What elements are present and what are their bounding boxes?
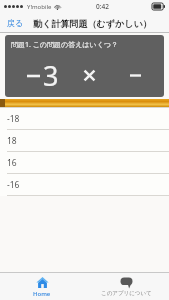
staticText: -16 [7, 179, 20, 191]
staticText: Home [33, 290, 51, 298]
button[interactable]: 18 [0, 130, 169, 152]
staticText: 問題1. この問題の答えはいくつ？ [11, 40, 119, 50]
staticText: Y!mobile [27, 3, 52, 11]
button[interactable]: -16 [0, 174, 169, 196]
staticText: 18 [7, 135, 17, 147]
staticText: 戻る [7, 18, 24, 28]
staticText: 動く計算問題（むずかしい） [33, 18, 152, 29]
staticText: 0:42 [96, 2, 109, 11]
button[interactable]: 戻る [5, 16, 26, 30]
staticText: -18 [7, 113, 20, 125]
staticText: 16 [7, 157, 17, 169]
button[interactable]: 16 [0, 152, 169, 174]
staticText: このアプリについて [101, 290, 152, 297]
other: Home [36, 276, 49, 289]
staticText: 3 [43, 57, 59, 94]
button[interactable]: About this app [84, 273, 169, 300]
button[interactable]: -18 [0, 108, 169, 130]
other: About this app [120, 276, 133, 289]
button[interactable]: Home [0, 273, 84, 300]
